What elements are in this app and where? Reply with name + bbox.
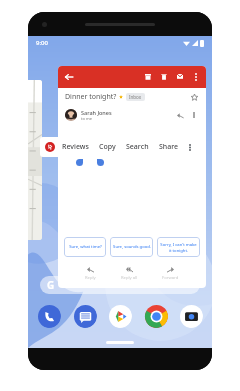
staticText: Search: [126, 142, 149, 152]
staticText: Dinner tonight?: [65, 92, 117, 102]
staticText: Reviews: [62, 142, 89, 152]
staticText: G: [47, 278, 55, 292]
button[interactable]: Maps recent task: [28, 80, 42, 240]
button[interactable]: Phone: [37, 304, 61, 328]
button[interactable]: Play Store: [108, 304, 132, 328]
button[interactable]: Camera: [179, 304, 203, 328]
staticText: 9:00: [36, 39, 48, 47]
staticText: Inbox: [129, 94, 142, 100]
button[interactable]: Sorry, I can't make it tonight.: [157, 237, 200, 257]
button[interactable]: Home gesture bar: [106, 341, 134, 344]
button[interactable]: Reply: [175, 110, 185, 120]
button[interactable]: Reviews: [61, 140, 90, 154]
staticText: Share: [159, 142, 179, 152]
button[interactable]: Message options: [189, 110, 199, 120]
button[interactable]: More actions: [185, 142, 195, 152]
button[interactable]: Sure, what time?: [64, 237, 106, 257]
button[interactable]: Share: [158, 140, 180, 154]
button[interactable]: Sure, sounds good.: [110, 237, 153, 257]
button[interactable]: Reviews app icon: [45, 142, 55, 152]
button[interactable]: Reply: [81, 265, 100, 282]
button[interactable]: Mark unread: [175, 72, 185, 82]
staticText: Sarah Jones: [81, 109, 112, 116]
staticText: Reply all: [121, 275, 138, 281]
button[interactable]: Reply all: [117, 265, 142, 282]
button[interactable]: Messages: [73, 304, 97, 328]
button[interactable]: Back: [63, 71, 75, 83]
button[interactable]: Forward: [158, 265, 183, 282]
staticText: Sure, sounds good.: [113, 244, 151, 250]
staticText: to me: [81, 116, 92, 121]
button[interactable]: Search: [125, 140, 150, 154]
button[interactable]: Delete: [159, 72, 169, 82]
button[interactable]: Chrome: [144, 304, 168, 328]
staticText: in Mountain View for dinner!: [107, 149, 173, 156]
button[interactable]: Copy: [98, 140, 117, 154]
staticText: Forward: [162, 275, 179, 281]
button[interactable]: More options: [191, 72, 201, 82]
staticText: Sure, what time?: [69, 244, 102, 250]
staticText: Sorry, I can't make it tonight.: [159, 242, 198, 253]
button[interactable]: Star: [189, 92, 199, 102]
staticText: Reply: [85, 275, 96, 281]
button[interactable]: Archive: [143, 72, 153, 82]
staticText: Copy: [99, 142, 116, 152]
button[interactable]: Google search: [40, 276, 200, 294]
